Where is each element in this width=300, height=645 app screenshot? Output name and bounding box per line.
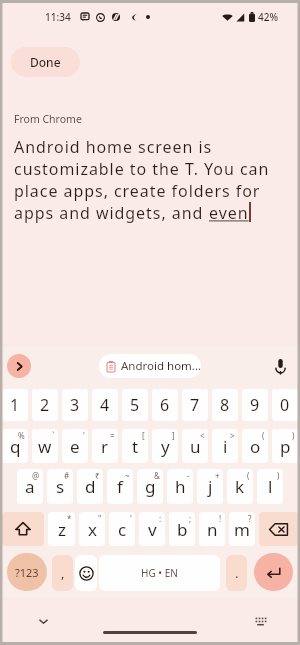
button[interactable]: 3 xyxy=(62,389,88,421)
button[interactable]: 2 xyxy=(32,389,58,421)
button[interactable]: m xyxy=(229,512,255,546)
staticText: y xyxy=(161,435,170,458)
staticText: @ xyxy=(32,470,40,481)
staticText: 9 xyxy=(250,394,260,416)
staticText: e xyxy=(70,435,80,458)
button[interactable]: w xyxy=(32,429,58,463)
button[interactable]: . xyxy=(226,555,247,591)
button[interactable]: v xyxy=(139,512,165,546)
staticText: * xyxy=(67,513,72,524)
button[interactable]: 1 xyxy=(2,389,28,421)
staticText: p xyxy=(280,435,291,458)
staticText: ₹ xyxy=(95,470,100,481)
button[interactable]: 7 xyxy=(182,389,208,421)
button[interactable]: Change keyboard xyxy=(250,611,270,631)
staticText: ` xyxy=(52,430,55,441)
button[interactable]: Voice input xyxy=(268,354,292,378)
button[interactable]: 0 xyxy=(272,389,298,421)
button[interactable]: Done xyxy=(11,47,80,77)
staticText: b xyxy=(177,518,188,541)
button[interactable]: Enter xyxy=(254,553,293,591)
staticText: = xyxy=(110,430,115,441)
staticText: a xyxy=(25,475,35,498)
button[interactable]: Shift xyxy=(2,512,44,546)
staticText: l xyxy=(268,475,273,498)
staticText: s xyxy=(56,475,65,498)
staticText: v xyxy=(148,518,157,541)
button[interactable]: z xyxy=(48,512,75,546)
staticText: g xyxy=(145,475,156,498)
staticText: even xyxy=(209,202,249,224)
button[interactable]: HG • EN xyxy=(99,555,220,591)
staticText: ' xyxy=(83,430,85,441)
button[interactable]: Expand suggestions xyxy=(7,354,31,378)
staticText: h xyxy=(175,475,186,498)
staticText: 11:34 xyxy=(45,10,71,24)
button[interactable]: s xyxy=(47,469,73,504)
button[interactable]: g xyxy=(137,469,163,504)
button[interactable]: , xyxy=(52,555,73,591)
staticText: f xyxy=(117,475,123,498)
staticText: ) xyxy=(277,470,280,481)
staticText: d xyxy=(85,475,96,498)
button[interactable]: i xyxy=(212,429,238,463)
button[interactable]: 8 xyxy=(212,389,238,421)
button[interactable]: j xyxy=(197,469,223,504)
button[interactable]: 5 xyxy=(122,389,148,421)
staticText: " xyxy=(98,513,102,524)
staticText: [ xyxy=(142,430,145,441)
button[interactable]: a xyxy=(17,469,43,504)
button[interactable]: c xyxy=(109,512,135,546)
button[interactable]: f xyxy=(107,469,133,504)
staticText: From Chrome xyxy=(14,112,82,126)
staticText: ' xyxy=(130,513,132,524)
button[interactable]: q xyxy=(2,429,28,463)
staticText: 3 xyxy=(70,394,80,416)
staticText: < xyxy=(200,430,205,441)
button[interactable]: b xyxy=(169,512,195,546)
staticText: 42% xyxy=(258,10,278,24)
button[interactable]: n xyxy=(199,512,225,546)
button[interactable]: y xyxy=(152,429,178,463)
staticText: Android home screen is customizable to t… xyxy=(14,136,270,202)
button[interactable]: p xyxy=(272,429,298,463)
button[interactable]: h xyxy=(167,469,193,504)
staticText: w xyxy=(38,435,52,458)
staticText: , xyxy=(61,564,65,582)
button[interactable]: l xyxy=(257,469,283,504)
button[interactable]: 6 xyxy=(152,389,178,421)
staticText: & xyxy=(154,470,160,481)
button[interactable]: t xyxy=(122,429,148,463)
button[interactable]: 4 xyxy=(92,389,118,421)
staticText: ) xyxy=(292,430,295,441)
staticText: t xyxy=(132,435,139,458)
staticText: 5 xyxy=(130,394,140,416)
staticText: - xyxy=(187,470,190,481)
button[interactable]: 9 xyxy=(242,389,268,421)
button[interactable]: Hide keyboard xyxy=(33,611,53,631)
staticText: 7 xyxy=(190,394,200,416)
staticText: HG • EN xyxy=(141,566,178,580)
staticText: 4 xyxy=(100,394,110,416)
button[interactable]: Emoji xyxy=(75,555,97,591)
button[interactable]: Backspace xyxy=(259,512,298,546)
button[interactable]: k xyxy=(227,469,253,504)
staticText: > xyxy=(230,430,235,441)
button[interactable]: d xyxy=(77,469,103,504)
staticText: z xyxy=(58,518,66,541)
staticText: k xyxy=(235,475,245,498)
button[interactable]: ?123 xyxy=(7,553,47,591)
button[interactable]: e xyxy=(62,429,88,463)
staticText: 8 xyxy=(220,394,230,416)
button[interactable]: u xyxy=(182,429,208,463)
staticText: 1 xyxy=(10,394,20,416)
staticText: % xyxy=(18,430,25,441)
staticText: c xyxy=(118,518,127,541)
button[interactable]: r xyxy=(92,429,118,463)
staticText: i xyxy=(223,435,228,458)
staticText: ! xyxy=(219,513,222,524)
staticText: ( xyxy=(262,430,265,441)
button[interactable]: o xyxy=(242,429,268,463)
button[interactable]: x xyxy=(79,512,105,546)
button[interactable]: Android hom... xyxy=(99,354,201,378)
